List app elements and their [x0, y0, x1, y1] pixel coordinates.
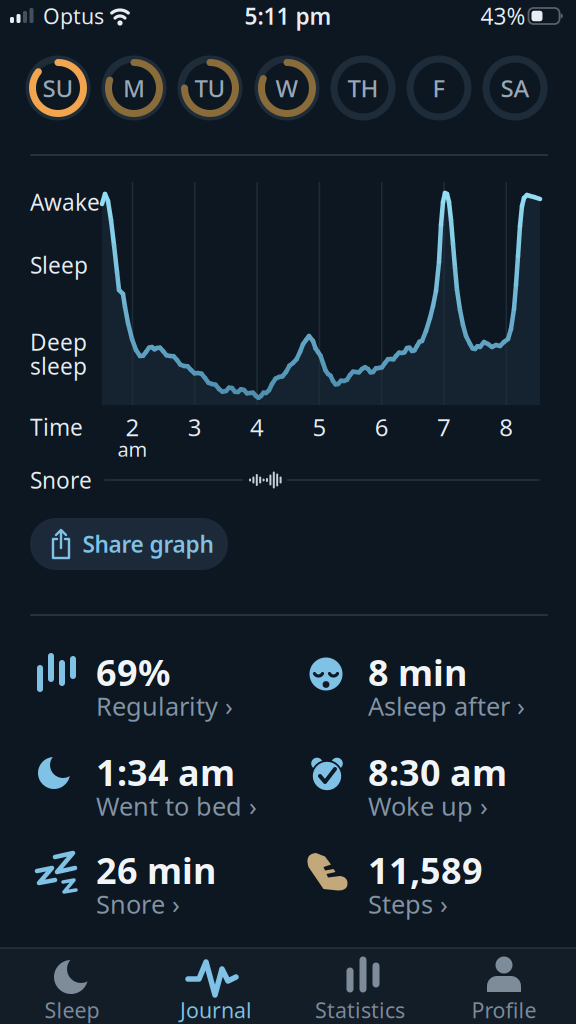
staticText: 5	[312, 411, 326, 443]
staticText: TH	[347, 72, 378, 104]
staticText: SU	[42, 72, 73, 104]
staticText: Went to bed ›	[96, 789, 257, 823]
staticText: Asleep after ›	[368, 689, 525, 723]
button[interactable]: TH	[334, 59, 392, 117]
staticText: Steps ›	[368, 887, 448, 921]
button[interactable]: 1:34 am	[30, 752, 280, 826]
staticText: Time	[30, 412, 83, 442]
staticText: Statistics	[315, 996, 405, 1024]
staticText: 69%	[96, 648, 170, 696]
staticText: 5:11 pm	[244, 1, 331, 31]
staticText: Awake	[30, 187, 100, 217]
staticText: am	[117, 436, 147, 462]
staticText: sleep	[30, 351, 87, 381]
staticText: 26 min	[96, 846, 216, 894]
staticText: W	[275, 72, 298, 104]
button[interactable]: M	[105, 59, 163, 117]
staticText: Deep	[30, 327, 87, 357]
staticText: Journal	[180, 996, 252, 1024]
staticText: TU	[194, 72, 225, 104]
button[interactable]: 8:30 am	[302, 752, 552, 826]
button[interactable]: 69%	[30, 652, 280, 726]
button[interactable]: Profile	[444, 951, 564, 1021]
staticText: 3	[188, 411, 202, 443]
staticText: Woke up ›	[368, 789, 488, 823]
button[interactable]: 26 min	[30, 850, 280, 924]
staticText: Regularity ›	[96, 689, 233, 723]
button[interactable]: Statistics	[300, 951, 420, 1021]
staticText: 1:34 am	[96, 748, 235, 796]
staticText: Share graph	[82, 529, 213, 559]
staticText: Sleep	[44, 996, 99, 1024]
staticText: Snore ›	[96, 887, 180, 921]
staticText: 4	[250, 411, 264, 443]
staticText: M	[123, 72, 145, 104]
button[interactable]: Journal	[156, 951, 276, 1021]
button[interactable]: W	[258, 59, 316, 117]
staticText: F	[432, 72, 445, 104]
button[interactable]: SU	[29, 59, 87, 117]
button[interactable]: 11,589	[302, 850, 552, 924]
button[interactable]: Sleep	[12, 951, 132, 1021]
staticText: 8	[499, 411, 513, 443]
button[interactable]: Share graph	[30, 518, 228, 570]
button[interactable]: TU	[181, 59, 239, 117]
staticText: Optus	[43, 2, 104, 30]
button[interactable]: SA	[486, 59, 544, 117]
staticText: 11,589	[368, 846, 483, 894]
button[interactable]: F	[410, 59, 468, 117]
staticText: 43%	[480, 1, 525, 31]
staticText: Profile	[471, 996, 536, 1024]
staticText: 8:30 am	[368, 748, 507, 796]
staticText: 7	[437, 411, 451, 443]
button[interactable]: 8 min	[302, 652, 552, 726]
staticText: 2	[125, 411, 139, 443]
staticText: Sleep	[30, 250, 88, 280]
staticText: 6	[375, 411, 389, 443]
staticText: 8 min	[368, 648, 467, 696]
staticText: SA	[500, 72, 529, 104]
staticText: Snore	[30, 465, 92, 495]
